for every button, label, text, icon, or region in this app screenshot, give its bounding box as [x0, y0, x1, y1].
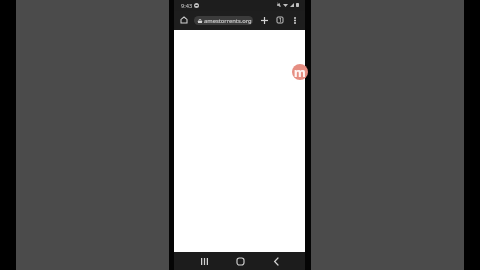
button[interactable]: Back	[264, 255, 288, 267]
button[interactable]: Switch tabs, 1 open tab	[274, 14, 286, 26]
button[interactable]: Home	[228, 255, 252, 267]
button[interactable]: Home page	[178, 14, 190, 26]
staticText: 9:43	[181, 2, 193, 10]
staticText: amestorrents.org	[204, 17, 252, 25]
button[interactable]: Recent apps	[192, 255, 216, 267]
staticText: m	[294, 64, 306, 80]
staticText: 1	[279, 17, 282, 23]
button[interactable]: New tab	[258, 14, 270, 26]
button[interactable]: More options	[289, 14, 301, 26]
button[interactable]: amestorrents.org	[194, 16, 253, 25]
